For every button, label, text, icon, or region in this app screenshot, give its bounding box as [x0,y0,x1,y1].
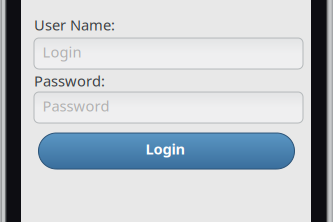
staticText: User Name: [34,15,115,34]
staticText: Login [145,139,185,158]
staticText: Login [42,42,81,61]
staticText: Password [42,96,109,115]
staticText: Password: [34,71,105,90]
button[interactable]: Login [38,133,294,169]
